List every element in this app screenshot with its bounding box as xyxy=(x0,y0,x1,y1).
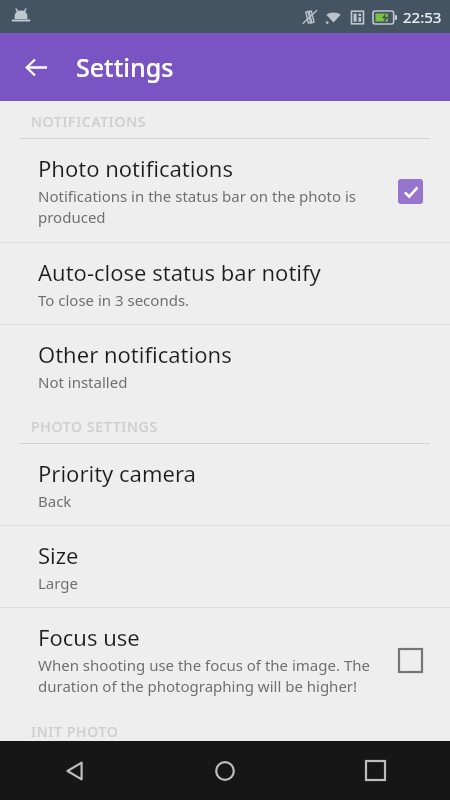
button[interactable]: Recent apps xyxy=(300,741,450,800)
button[interactable]: Focus use xyxy=(0,608,450,711)
staticText: Priority camera xyxy=(38,458,196,488)
other: Photo notifications xyxy=(390,171,430,211)
staticText: INIT PHOTO xyxy=(31,722,119,741)
staticText: PHOTO SETTINGS xyxy=(31,417,158,436)
staticText: Large xyxy=(38,573,79,593)
staticText: Other notifications xyxy=(38,339,232,369)
staticText: Photo notifications xyxy=(38,153,233,183)
staticText: Auto-close status bar notify xyxy=(38,257,321,287)
button[interactable]: Size xyxy=(0,526,450,607)
button[interactable]: Photo notifications xyxy=(0,139,450,242)
button[interactable]: Back xyxy=(0,741,150,800)
staticText: When shooting use the focus of the image… xyxy=(38,655,382,697)
staticText: Not installed xyxy=(38,372,128,392)
staticText: To close in 3 seconds. xyxy=(38,290,190,310)
staticText: Back xyxy=(38,491,72,511)
staticText: NOTIFICATIONS xyxy=(31,112,147,131)
button[interactable]: Home xyxy=(150,741,300,800)
button[interactable]: Priority camera xyxy=(0,444,450,525)
button[interactable]: Back xyxy=(12,43,60,91)
button[interactable] xyxy=(398,179,423,204)
button[interactable]: Other notifications xyxy=(0,325,450,406)
button[interactable] xyxy=(398,648,423,673)
button[interactable]: Auto-close status bar notify xyxy=(0,243,450,324)
staticText: Focus use xyxy=(38,622,140,652)
staticText: Notifications in the status bar on the p… xyxy=(38,186,382,228)
staticText: 22:53 xyxy=(403,7,442,27)
staticText: Settings xyxy=(76,50,174,84)
staticText: Size xyxy=(38,540,79,570)
other: Focus use xyxy=(390,640,430,680)
